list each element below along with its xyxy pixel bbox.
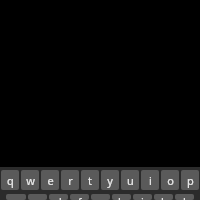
- staticText: e: [47, 173, 54, 188]
- button[interactable]: t: [81, 170, 99, 190]
- staticText: j: [141, 194, 144, 200]
- staticText: p: [187, 173, 194, 188]
- button[interactable]: l: [175, 194, 194, 200]
- button[interactable]: r: [61, 170, 79, 190]
- staticText: y: [107, 173, 113, 188]
- button[interactable]: o: [161, 170, 179, 190]
- button[interactable]: w: [21, 170, 39, 190]
- staticText: i: [149, 173, 152, 188]
- staticText: h: [118, 194, 125, 200]
- staticText: f: [78, 194, 82, 200]
- button[interactable]: u: [121, 170, 139, 190]
- button[interactable]: e: [41, 170, 59, 190]
- button[interactable]: q: [1, 170, 19, 190]
- button[interactable]: y: [101, 170, 119, 190]
- staticText: l: [183, 194, 186, 200]
- button[interactable]: d: [49, 194, 68, 200]
- staticText: w: [26, 173, 35, 188]
- staticText: u: [127, 173, 134, 188]
- staticText: k: [161, 194, 167, 200]
- button[interactable]: h: [112, 194, 131, 200]
- staticText: r: [68, 173, 73, 188]
- button[interactable]: i: [141, 170, 159, 190]
- button[interactable]: k: [154, 194, 173, 200]
- staticText: o: [167, 173, 174, 188]
- staticText: t: [88, 173, 92, 188]
- button[interactable]: g: [91, 194, 110, 200]
- staticText: d: [55, 194, 62, 200]
- button[interactable]: a: [6, 194, 26, 200]
- button[interactable]: f: [70, 194, 89, 200]
- button[interactable]: p: [181, 170, 199, 190]
- staticText: q: [7, 173, 14, 188]
- button[interactable]: j: [133, 194, 152, 200]
- button[interactable]: s: [28, 194, 47, 200]
